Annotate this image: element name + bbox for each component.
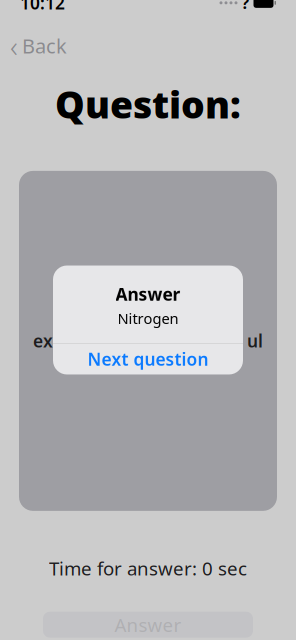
button[interactable]: Next question bbox=[53, 343, 243, 374]
staticText: Next question bbox=[87, 347, 208, 370]
staticText: Answer bbox=[114, 612, 181, 637]
staticText: ? bbox=[241, 0, 249, 13]
staticText: Nitrogen bbox=[117, 308, 178, 328]
staticText: Answer bbox=[115, 282, 180, 305]
staticText: 10:12 bbox=[20, 0, 65, 14]
staticText: Back bbox=[22, 32, 67, 59]
button[interactable]: Answer bbox=[43, 612, 253, 638]
staticText: ‹ bbox=[10, 26, 18, 65]
staticText: ul bbox=[247, 329, 263, 352]
staticText: Question: bbox=[55, 79, 241, 129]
staticText: ex bbox=[33, 329, 53, 352]
staticText: Time for answer: 0 sec bbox=[49, 556, 247, 581]
button[interactable]: ‹ bbox=[0, 22, 77, 69]
